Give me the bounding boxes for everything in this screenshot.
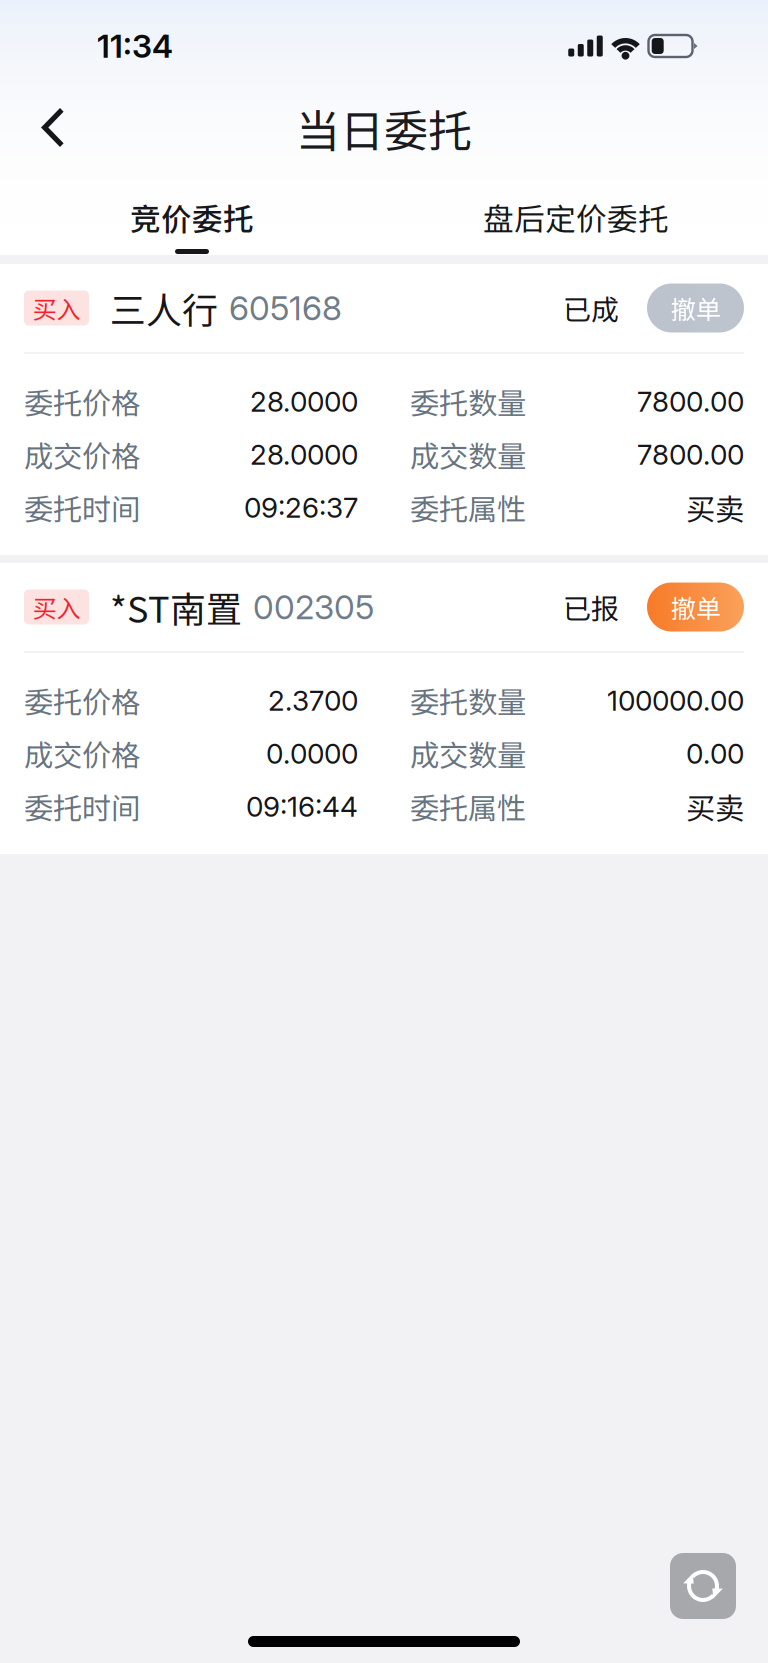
staticText: 委托价格	[24, 380, 140, 423]
staticText: 09:26:37	[244, 491, 358, 524]
staticText: 三人行	[110, 282, 218, 334]
staticText: 已报	[563, 587, 619, 627]
staticText: 委托时间	[24, 785, 140, 828]
staticText: 605168	[229, 288, 342, 328]
staticText: 撤单	[670, 290, 720, 326]
button[interactable]: Refresh	[670, 1553, 736, 1619]
staticText: 28.0000	[250, 385, 358, 418]
staticText: 2.3700	[268, 684, 358, 717]
button[interactable]: 盘后定价委托	[384, 169, 768, 255]
button[interactable]: 撤单	[647, 283, 744, 332]
staticText: 买卖	[686, 785, 744, 828]
staticText: 11:34	[97, 27, 173, 65]
staticText: 委托时间	[24, 486, 140, 529]
staticText: *ST南置	[110, 581, 242, 633]
staticText: 成交价格	[24, 732, 140, 775]
staticText: 7800.00	[637, 385, 744, 418]
staticText: 0.0000	[266, 737, 358, 770]
staticText: 成交价格	[24, 433, 140, 476]
staticText: 委托属性	[410, 486, 526, 529]
staticText: 竞价委托	[130, 195, 254, 239]
staticText: 当日委托	[296, 96, 472, 160]
staticText: 委托属性	[410, 785, 526, 828]
staticText: 成交数量	[410, 732, 526, 775]
staticText: 撤单	[670, 589, 720, 625]
button[interactable]: 撤单	[647, 582, 744, 631]
staticText: 09:16:44	[246, 790, 358, 823]
staticText: 0.00	[686, 737, 744, 770]
staticText: 委托价格	[24, 679, 140, 722]
staticText: 成交数量	[410, 433, 526, 476]
staticText: 买卖	[686, 486, 744, 529]
staticText: 7800.00	[637, 438, 744, 471]
staticText: 盘后定价委托	[483, 195, 669, 239]
button[interactable]: Back	[20, 89, 84, 167]
button[interactable]: 竞价委托	[0, 169, 384, 255]
staticText: 买入	[32, 291, 80, 325]
staticText: 已成	[563, 288, 619, 328]
staticText: 002305	[253, 587, 374, 627]
staticText: 委托数量	[410, 679, 526, 722]
staticText: 买入	[32, 590, 80, 624]
staticText: 28.0000	[250, 438, 358, 471]
staticText: 100000.00	[607, 684, 744, 717]
staticText: 委托数量	[410, 380, 526, 423]
